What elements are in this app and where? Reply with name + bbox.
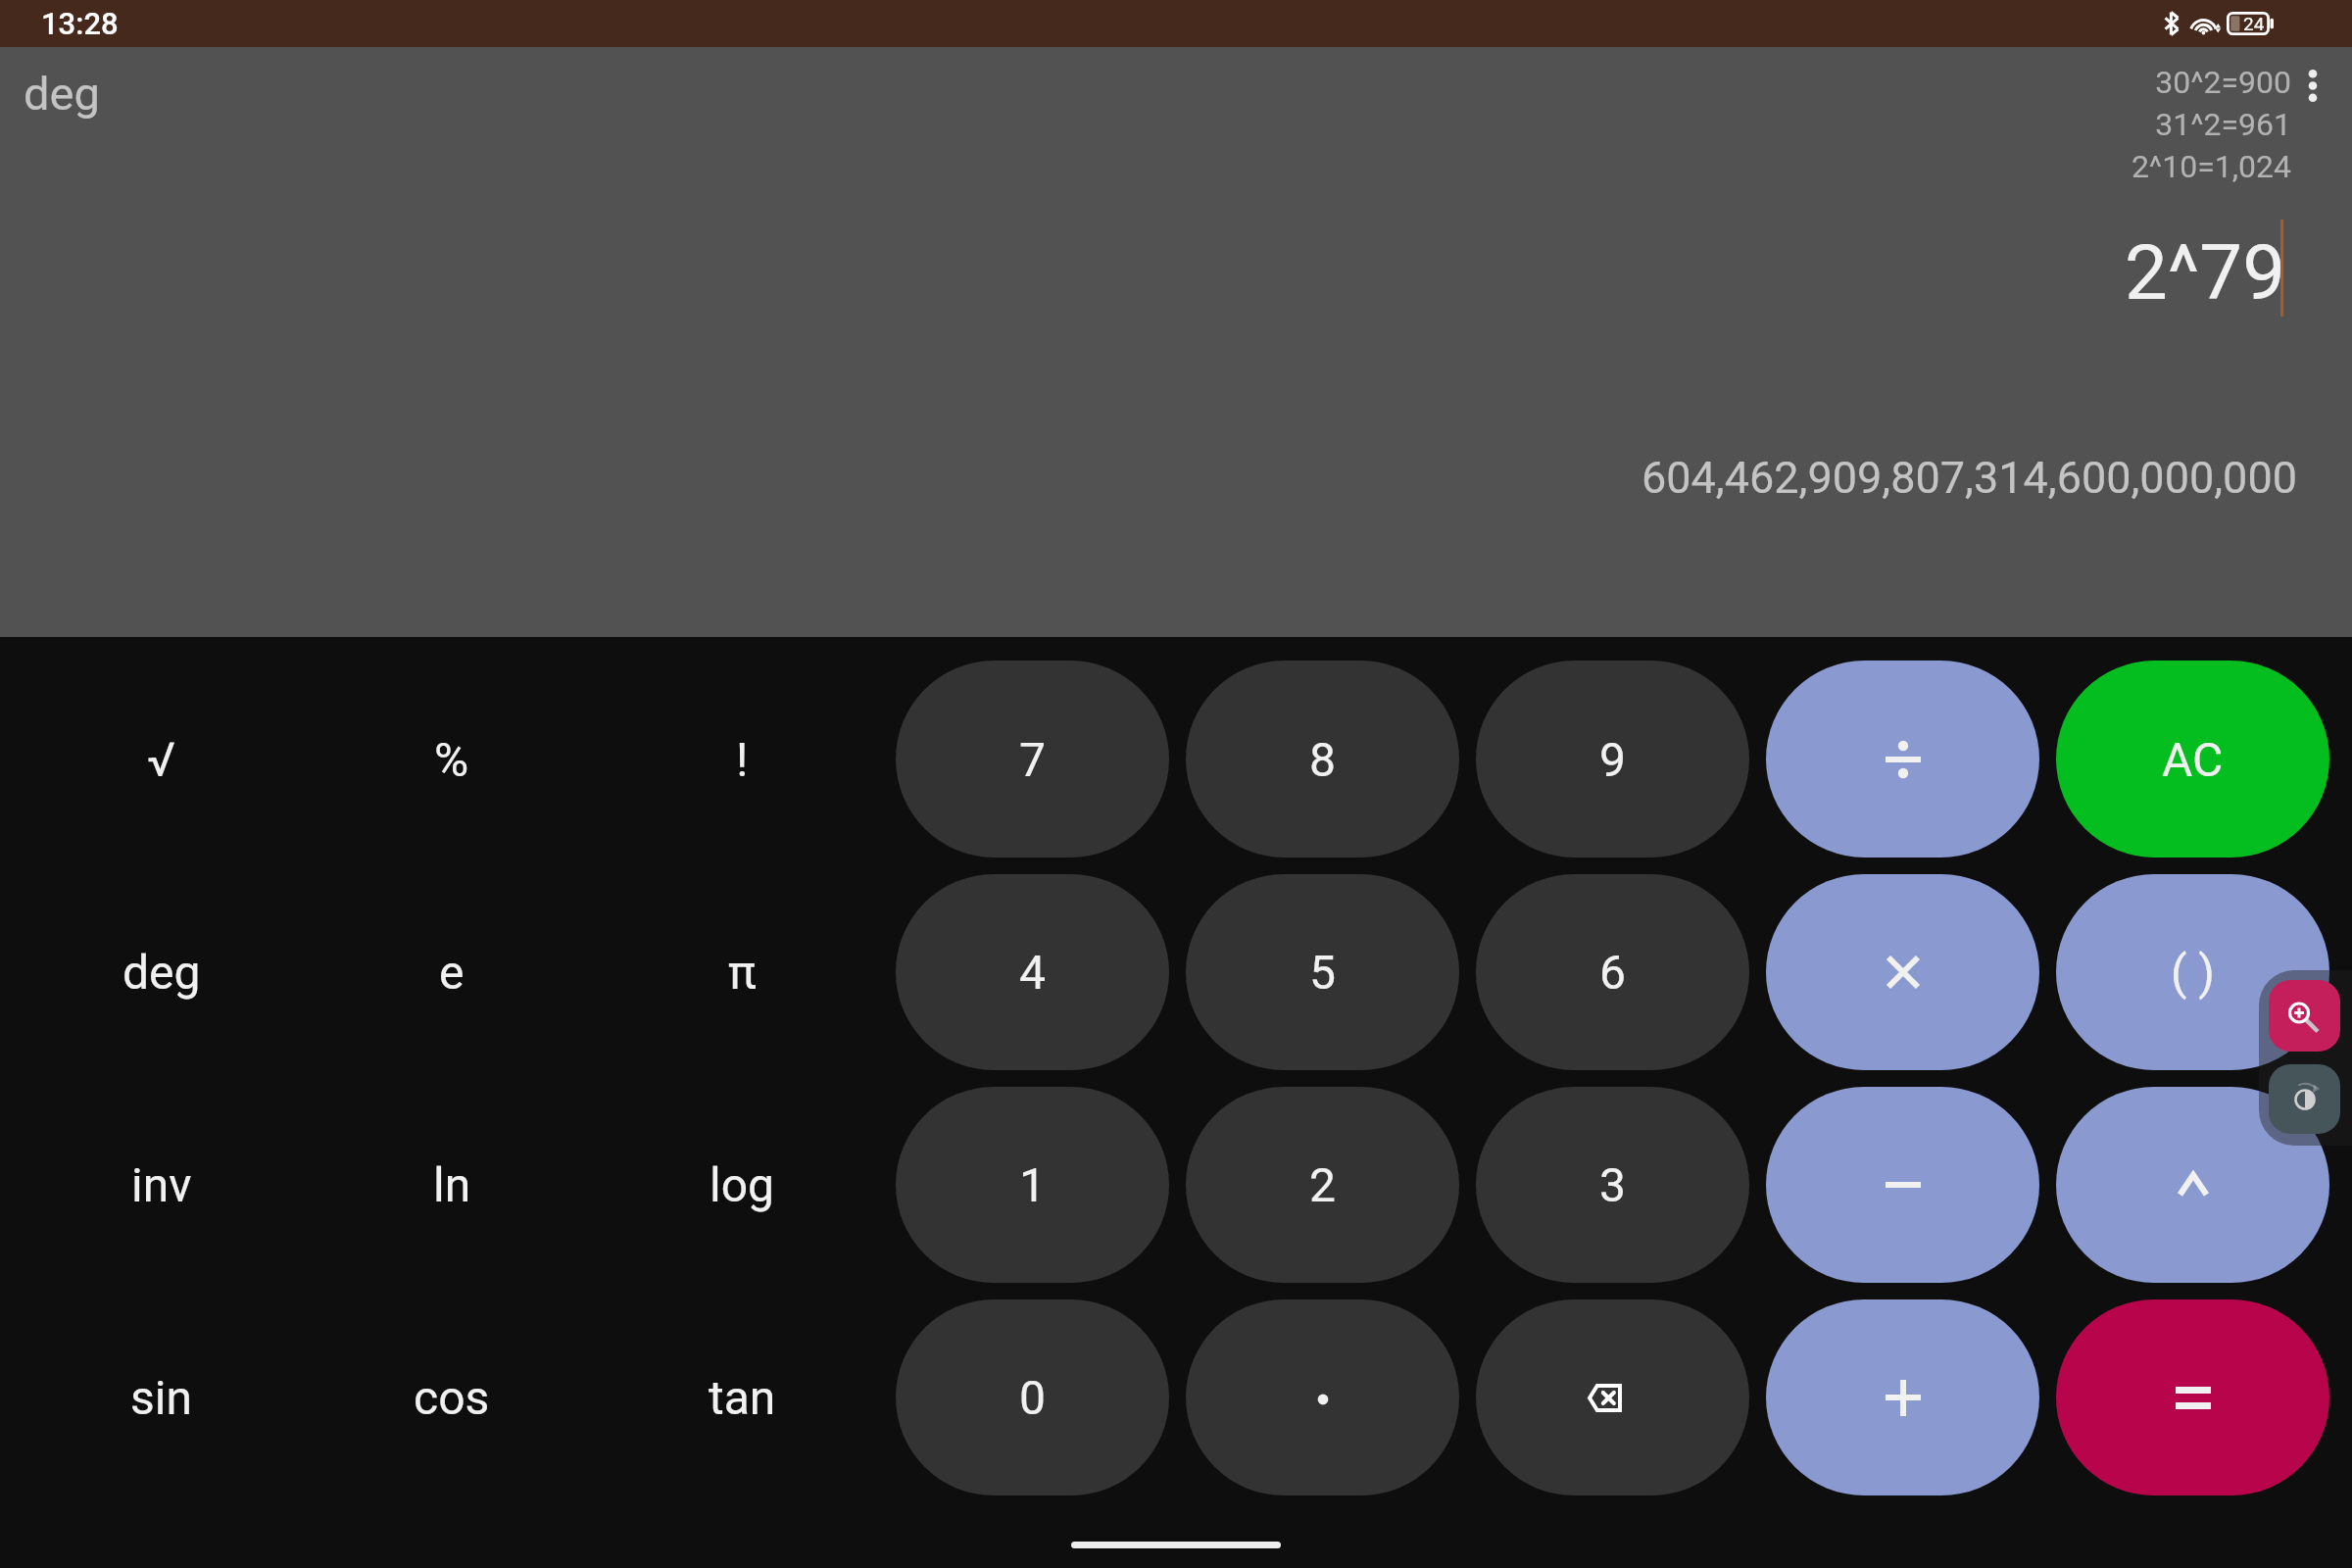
staticText: deg	[122, 945, 201, 1000]
button[interactable]: Magnification	[2269, 980, 2340, 1052]
other: Divide	[1874, 730, 1933, 789]
button[interactable]: 0	[896, 1299, 1169, 1495]
button[interactable]: Divide	[1766, 661, 2039, 857]
button[interactable]: Decimal point	[1186, 1299, 1459, 1495]
other: Plus	[1874, 1368, 1933, 1427]
staticText: cos	[414, 1370, 490, 1425]
button[interactable]: !	[597, 661, 887, 857]
button[interactable]: e	[307, 874, 597, 1070]
other: Power	[2164, 1155, 2223, 1214]
other: Equals	[2164, 1368, 2223, 1427]
button[interactable]: inv	[16, 1087, 307, 1283]
button[interactable]: ln	[307, 1087, 597, 1283]
button[interactable]: Equals	[2056, 1299, 2329, 1495]
staticText: sin	[130, 1370, 192, 1425]
button[interactable]: deg	[16, 874, 307, 1070]
staticText: 4	[1019, 945, 1046, 1000]
button[interactable]: cos	[307, 1299, 597, 1495]
staticText: 30^2=900	[2155, 64, 2291, 101]
button[interactable]: 5	[1186, 874, 1459, 1070]
button[interactable]: 2	[1186, 1087, 1459, 1283]
staticText: log	[710, 1157, 774, 1212]
other: Multiply	[1874, 943, 1933, 1002]
button[interactable]: Plus	[1766, 1299, 2039, 1495]
staticText: 3	[1599, 1157, 1626, 1212]
other: Minus	[1874, 1155, 1933, 1214]
staticText: AC	[2162, 732, 2224, 787]
button[interactable]: Multiply	[1766, 874, 2039, 1070]
staticText: 7	[1019, 732, 1046, 787]
staticText: 8	[1309, 732, 1336, 787]
button[interactable]: %	[307, 661, 597, 857]
button[interactable]: 3	[1476, 1087, 1749, 1283]
staticText: 31^2=961	[2155, 106, 2291, 143]
staticText: tan	[709, 1370, 776, 1425]
staticText: 1	[1019, 1157, 1046, 1212]
button[interactable]: 8	[1186, 661, 1459, 857]
staticText: 604,462,909,807,314,600,000,000	[1641, 452, 2297, 504]
button[interactable]: Power	[2056, 1087, 2329, 1283]
button[interactable]: Minus	[1766, 1087, 2039, 1283]
button[interactable]: 4	[896, 874, 1169, 1070]
staticText: 5	[1309, 945, 1336, 1000]
button[interactable]: log	[597, 1087, 887, 1283]
button[interactable]: 7	[896, 661, 1169, 857]
staticText: π	[728, 945, 757, 1000]
staticText: inv	[131, 1157, 192, 1212]
staticText: 2^10=1,024	[2131, 148, 2291, 185]
staticText: 2	[1309, 1157, 1336, 1212]
staticText: %	[434, 732, 469, 787]
button[interactable]: sin	[16, 1299, 307, 1495]
button[interactable]: 6	[1476, 874, 1749, 1070]
staticText: 9	[1599, 732, 1626, 787]
staticText: ln	[433, 1157, 471, 1212]
button[interactable]: 9	[1476, 661, 1749, 857]
button[interactable]: Contrast	[2269, 1064, 2340, 1134]
other: Backspace	[1587, 1384, 1622, 1412]
staticText: deg	[24, 67, 100, 121]
button[interactable]: Backspace	[1476, 1299, 1749, 1495]
staticText: e	[439, 945, 465, 1000]
staticText: 13:28	[41, 6, 119, 41]
staticText: ( )	[2171, 945, 2216, 1000]
button[interactable]: 1	[896, 1087, 1169, 1283]
staticText: 24	[2243, 13, 2265, 34]
button[interactable]: ( )	[2056, 874, 2329, 1070]
staticText: !	[736, 732, 749, 787]
staticText: √	[147, 732, 175, 787]
other: Decimal point	[1294, 1368, 1352, 1427]
button[interactable]: AC	[2056, 661, 2329, 857]
button[interactable]: π	[597, 874, 887, 1070]
staticText: 2^79	[2124, 228, 2285, 318]
button[interactable]: √	[16, 661, 307, 857]
staticText: 0	[1019, 1370, 1046, 1425]
button[interactable]: tan	[597, 1299, 887, 1495]
staticText: 6	[1599, 945, 1626, 1000]
button[interactable]: More options	[2272, 44, 2352, 126]
